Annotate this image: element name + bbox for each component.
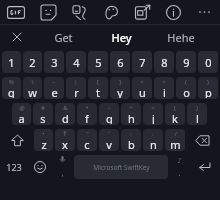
staticText: g: [106, 111, 113, 124]
button[interactable]: Microsoft SwiftKey: [74, 155, 168, 179]
button[interactable]: ₹: [55, 129, 75, 151]
button[interactable]: Clipboard: [127, 0, 158, 24]
button[interactable]: Voice input and comma: [52, 153, 73, 181]
button[interactable]: ": [77, 129, 97, 151]
staticText: %: [9, 78, 14, 86]
staticText: i: [163, 85, 166, 98]
staticText: @: [19, 104, 25, 112]
staticText: Microsoft SwiftKey: [93, 163, 150, 172]
button[interactable]: 123: [1, 153, 27, 181]
button[interactable]: Translate: [64, 0, 96, 24]
staticText: ₹: [63, 130, 67, 138]
staticText: h: [128, 111, 135, 124]
button[interactable]: 6: [110, 51, 130, 73]
staticText: t: [96, 85, 100, 98]
staticText: 7: [139, 55, 146, 70]
button[interactable]: ]: [110, 77, 130, 99]
staticText: ;: [152, 130, 154, 138]
staticText: ): [196, 104, 198, 112]
staticText: 123: [6, 161, 22, 173]
button[interactable]: 3: [44, 51, 64, 73]
button[interactable]: 8: [154, 51, 174, 73]
button[interactable]: 5: [88, 51, 108, 73]
button[interactable]: Shift: [1, 127, 33, 153]
staticText: ~: [52, 78, 56, 86]
button[interactable]: =: [143, 103, 163, 125]
button[interactable]: Hehe: [151, 25, 210, 49]
button[interactable]: 4: [66, 51, 86, 73]
staticText: m: [170, 137, 181, 150]
button[interactable]: Close suggestions: [0, 25, 34, 49]
button[interactable]: *: [77, 103, 97, 125]
staticText: 8: [161, 55, 168, 70]
staticText: a: [18, 111, 25, 124]
button[interactable]: ): [187, 103, 207, 125]
staticText: e: [51, 85, 58, 98]
staticText: ": [86, 130, 89, 138]
button[interactable]: 0: [198, 51, 218, 73]
button[interactable]: 2: [23, 51, 42, 73]
button[interactable]: Theme: [96, 0, 127, 24]
button[interactable]: Backspace: [186, 127, 219, 153]
button[interactable]: Get: [34, 25, 92, 49]
button[interactable]: (: [165, 103, 185, 125]
button[interactable]: <: [132, 77, 152, 99]
button[interactable]: ~: [44, 77, 64, 99]
staticText: Hey: [111, 30, 132, 45]
button[interactable]: ): [198, 77, 218, 99]
staticText: [: [97, 78, 99, 86]
staticText: w: [28, 85, 37, 98]
button[interactable]: +: [121, 103, 141, 125]
button[interactable]: ': [99, 129, 119, 151]
staticText: 0: [205, 55, 212, 70]
button[interactable]: GIF: [0, 0, 32, 24]
staticText: (: [174, 104, 176, 112]
staticText: >: [162, 78, 166, 86]
staticText: 2: [29, 55, 36, 70]
staticText: o: [183, 85, 190, 98]
button[interactable]: Info: [158, 0, 189, 24]
staticText: =: [151, 104, 155, 112]
button[interactable]: 1: [2, 51, 21, 73]
staticText: 5: [95, 55, 102, 70]
staticText: ]: [119, 78, 121, 86]
staticText: ♪: [177, 157, 182, 165]
button[interactable]: \: [23, 77, 42, 99]
button[interactable]: @: [12, 103, 31, 125]
button[interactable]: Period: [169, 153, 190, 181]
button[interactable]: >: [154, 77, 174, 99]
staticText: Hehe: [167, 30, 195, 45]
button[interactable]: #: [33, 103, 53, 125]
staticText: z: [41, 137, 47, 150]
button[interactable]: Emoji: [27, 153, 52, 181]
staticText: p: [205, 85, 212, 98]
staticText: d: [62, 111, 69, 124]
button[interactable]: -: [99, 103, 119, 125]
button[interactable]: •: [34, 129, 53, 151]
staticText: j: [152, 111, 155, 124]
button[interactable]: &: [55, 103, 75, 125]
staticText: c: [84, 137, 90, 150]
button[interactable]: /: [165, 129, 185, 151]
staticText: ': [108, 130, 110, 138]
button[interactable]: :: [121, 129, 141, 151]
staticText: :: [130, 130, 132, 138]
button[interactable]: 9: [176, 51, 196, 73]
staticText: .: [178, 167, 181, 178]
button[interactable]: (: [176, 77, 196, 99]
button[interactable]: Hey: [92, 25, 151, 49]
staticText: <: [140, 78, 144, 86]
button[interactable]: More: [189, 0, 220, 24]
staticText: f: [85, 111, 89, 124]
button[interactable]: Sticker: [32, 0, 64, 24]
button[interactable]: |: [66, 77, 86, 99]
button[interactable]: [: [88, 77, 108, 99]
button[interactable]: %: [2, 77, 21, 99]
staticText: l: [196, 111, 199, 124]
button[interactable]: 7: [132, 51, 152, 73]
staticText: s: [40, 111, 46, 124]
button[interactable]: Enter: [190, 153, 219, 181]
staticText: \: [31, 78, 34, 86]
button[interactable]: ;: [143, 129, 163, 151]
staticText: u: [139, 85, 146, 98]
